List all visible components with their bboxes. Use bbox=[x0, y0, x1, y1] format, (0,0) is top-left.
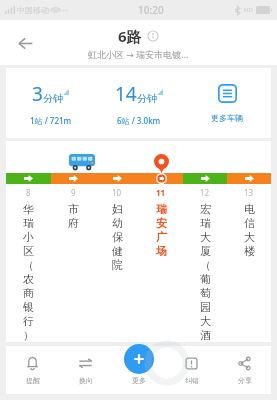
staticText: 13 bbox=[244, 187, 254, 198]
staticText: 葡 bbox=[200, 272, 211, 286]
staticText: 厦 bbox=[200, 244, 211, 258]
staticText: 楼 bbox=[244, 244, 255, 258]
staticText: 纠错 bbox=[185, 376, 199, 385]
button[interactable]: 市 bbox=[51, 202, 95, 400]
button[interactable]: 电 bbox=[227, 202, 271, 400]
staticText: 6站 / 3.0km bbox=[117, 115, 161, 126]
staticText: 宏 bbox=[200, 202, 211, 216]
staticText: 市 bbox=[68, 202, 79, 216]
button[interactable]: 华 bbox=[6, 202, 51, 400]
button[interactable]: 提醒 bbox=[6, 346, 59, 394]
button[interactable]: 瑞 bbox=[139, 202, 183, 400]
staticText: 华 bbox=[23, 202, 34, 216]
staticText: 萄 bbox=[200, 286, 211, 300]
staticText: 3 bbox=[32, 81, 43, 107]
button[interactable]: 更多 bbox=[112, 346, 165, 394]
staticText: 10:20 bbox=[138, 3, 164, 17]
staticText: 虹北小区 → 瑞安市电镀... bbox=[88, 48, 189, 60]
button[interactable]: 换向 bbox=[59, 346, 112, 394]
staticText: 保 bbox=[112, 230, 123, 244]
staticText: 提醒 bbox=[26, 376, 40, 385]
staticText: 大 bbox=[200, 314, 211, 328]
staticText: 商 bbox=[23, 286, 34, 300]
staticText: 1站 / 721m bbox=[30, 115, 72, 126]
button[interactable]: 更多车辆 bbox=[183, 68, 271, 138]
staticText: 更多车辆 bbox=[211, 113, 243, 123]
staticText: 安 bbox=[156, 216, 167, 230]
staticText: ··· bbox=[62, 5, 69, 16]
staticText: 6路 bbox=[118, 26, 142, 46]
staticText: 小 bbox=[23, 230, 34, 244]
button[interactable]: 分享 bbox=[218, 346, 271, 394]
staticText: 农 bbox=[23, 272, 34, 286]
staticText: 瑞 bbox=[156, 202, 167, 216]
staticText: 幼 bbox=[112, 216, 123, 230]
staticText: 10 bbox=[112, 187, 122, 198]
staticText: 店 bbox=[200, 342, 211, 356]
staticText: 分享 bbox=[238, 376, 252, 385]
button[interactable]: 14 bbox=[95, 68, 183, 138]
staticText: 中国移动 bbox=[17, 5, 49, 15]
button[interactable]: 3 bbox=[6, 68, 95, 138]
staticText: 信 bbox=[244, 216, 255, 230]
staticText: 瑞 bbox=[23, 216, 34, 230]
staticText: 14 bbox=[115, 81, 137, 107]
staticText: 11 bbox=[156, 187, 166, 198]
staticText: 大 bbox=[200, 230, 211, 244]
staticText: 区 bbox=[23, 244, 34, 258]
staticText: 院 bbox=[112, 258, 123, 272]
button[interactable]: 妇 bbox=[95, 202, 139, 400]
staticText: HD bbox=[244, 6, 253, 14]
staticText: 分钟 bbox=[137, 92, 157, 105]
staticText: 大 bbox=[244, 230, 255, 244]
button[interactable]: Add bbox=[124, 344, 154, 374]
staticText: （ bbox=[23, 258, 34, 272]
staticText: ） bbox=[23, 328, 34, 342]
staticText: 广 bbox=[156, 230, 167, 244]
button[interactable]: Route info bbox=[146, 29, 160, 43]
staticText: 换向 bbox=[79, 376, 93, 385]
staticText: 妇 bbox=[112, 202, 123, 216]
staticText: 园 bbox=[200, 300, 211, 314]
button[interactable]: Back bbox=[8, 26, 42, 60]
staticText: 府 bbox=[68, 216, 79, 230]
staticText: 银 bbox=[23, 300, 34, 314]
staticText: 瑞 bbox=[200, 216, 211, 230]
staticText: （ bbox=[200, 258, 211, 272]
staticText: 行 bbox=[23, 314, 34, 328]
button[interactable]: 纠错 bbox=[165, 346, 218, 394]
staticText: 12 bbox=[200, 187, 210, 198]
staticText: 9 bbox=[71, 187, 76, 198]
staticText: 健 bbox=[112, 244, 123, 258]
staticText: 分钟 bbox=[43, 92, 63, 105]
staticText: 更多 bbox=[132, 376, 146, 385]
staticText: 8 bbox=[26, 187, 31, 198]
staticText: 电 bbox=[244, 202, 255, 216]
button[interactable]: 宏 bbox=[183, 202, 227, 400]
staticText: 酒 bbox=[200, 328, 211, 342]
staticText: 场 bbox=[156, 244, 167, 258]
